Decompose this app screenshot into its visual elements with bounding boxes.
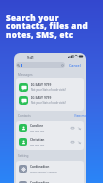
- other: Call: [78, 141, 81, 144]
- button[interactable]: Clear search: [16, 62, 65, 68]
- staticText: Christian: [30, 138, 45, 142]
- other: Clear search: [61, 64, 64, 67]
- staticText: Not your Stats of code visits?: [31, 88, 66, 92]
- button[interactable]: Caroline: [16, 121, 84, 135]
- staticText: View more: [74, 114, 86, 118]
- button[interactable]: IG EASY 9799: [16, 81, 84, 94]
- button[interactable]: View more: [74, 114, 86, 118]
- staticText: 000 000 000: [30, 143, 45, 146]
- other: Message: [71, 141, 74, 144]
- staticText: Cardinadion: [30, 181, 50, 183]
- staticText: Messages: [18, 73, 33, 77]
- other: Call: [78, 127, 81, 130]
- button[interactable]: Cardinadion: [16, 177, 84, 183]
- staticText: IG EASY 9799: [31, 83, 52, 87]
- staticText: Not your Stats of code visits?: [31, 101, 66, 105]
- staticText: Caroline: [30, 124, 44, 128]
- button[interactable]: Cardinadion: [16, 161, 84, 177]
- staticText: IG EASY 9799: [31, 96, 52, 100]
- staticText: 000 000 000: [30, 129, 45, 132]
- staticText: Cancel: [69, 63, 81, 68]
- staticText: Search your contacts, files and notes, S…: [6, 12, 88, 40]
- other: Message: [71, 127, 74, 130]
- button[interactable]: IG EASY 9799: [16, 94, 84, 107]
- button[interactable]: Christian: [16, 135, 84, 149]
- staticText: Select setting > setting: [30, 170, 57, 173]
- button[interactable]: Cancel: [69, 63, 81, 68]
- staticText: Setting: [18, 154, 29, 158]
- staticText: Cardinadion: [30, 165, 50, 169]
- staticText: Contacts: [18, 114, 31, 118]
- staticText: 9:41: [27, 55, 34, 60]
